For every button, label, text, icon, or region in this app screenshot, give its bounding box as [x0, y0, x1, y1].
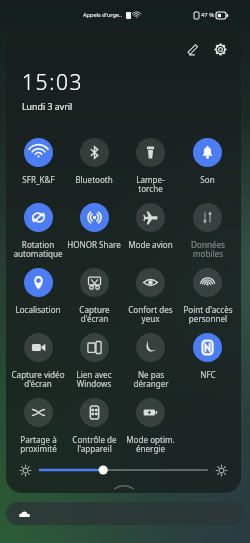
- staticText: Mode optim. énergie: [126, 434, 175, 455]
- staticText: Contrôle de l'appareil: [72, 434, 117, 455]
- staticText: Capture d'écran: [79, 304, 110, 325]
- staticText: 15:03: [22, 68, 84, 97]
- button[interactable]: Lampe- torche: [122, 137, 179, 202]
- button[interactable]: Capture vidéo d'écran: [10, 332, 66, 397]
- button[interactable]: Données mobiles: [179, 202, 236, 267]
- staticText: Confort des yeux: [128, 304, 173, 325]
- staticText: Données mobiles: [191, 239, 225, 260]
- button[interactable]: Contrôle de l'appareil: [66, 397, 122, 462]
- button[interactable]: Bluetooth: [66, 137, 122, 202]
- staticText: SFR_K&F: [22, 174, 55, 185]
- button[interactable]: Confort des yeux: [122, 267, 179, 332]
- staticText: Appels d'urge..: [83, 11, 123, 19]
- button[interactable]: HONOR Share: [66, 202, 122, 267]
- staticText: Localisation: [15, 304, 61, 315]
- staticText: 47 %: [201, 11, 214, 19]
- staticText: NFC: [200, 369, 216, 380]
- staticText: Partage à proximité: [20, 434, 57, 455]
- staticText: Point d'accès personnel: [183, 304, 233, 325]
- button[interactable]: Partage à proximité: [10, 397, 66, 462]
- button[interactable]: Modifier: [182, 39, 202, 59]
- button[interactable]: Son: [179, 137, 236, 202]
- button[interactable]: SFR_K&F: [10, 137, 66, 202]
- staticText: Rotation automatique: [13, 239, 63, 260]
- staticText: Lien avec Windows: [76, 369, 112, 390]
- button[interactable]: Mode optim. énergie: [122, 397, 179, 462]
- staticText: Ne pas déranger: [133, 369, 169, 390]
- staticText: Son: [200, 174, 215, 185]
- staticText: Lampe- torche: [136, 174, 165, 195]
- button[interactable]: Ne pas déranger: [122, 332, 179, 397]
- button[interactable]: Capture d'écran: [66, 267, 122, 332]
- button[interactable]: Mode avion: [122, 202, 179, 267]
- staticText: Lundi 3 avril: [22, 101, 73, 113]
- button[interactable]: Lien avec Windows: [66, 332, 122, 397]
- button[interactable]: [6, 502, 244, 525]
- button[interactable]: Point d'accès personnel: [179, 267, 236, 332]
- staticText: Mode avion: [128, 239, 173, 250]
- button[interactable]: Rotation automatique: [10, 202, 66, 267]
- staticText: HONOR Share: [67, 239, 121, 250]
- button[interactable]: NFC: [179, 332, 236, 397]
- staticText: Bluetooth: [75, 174, 113, 185]
- staticText: Capture vidéo d'écran: [11, 369, 65, 390]
- button[interactable]: Paramètres: [210, 39, 230, 59]
- button[interactable]: Localisation: [10, 267, 66, 332]
